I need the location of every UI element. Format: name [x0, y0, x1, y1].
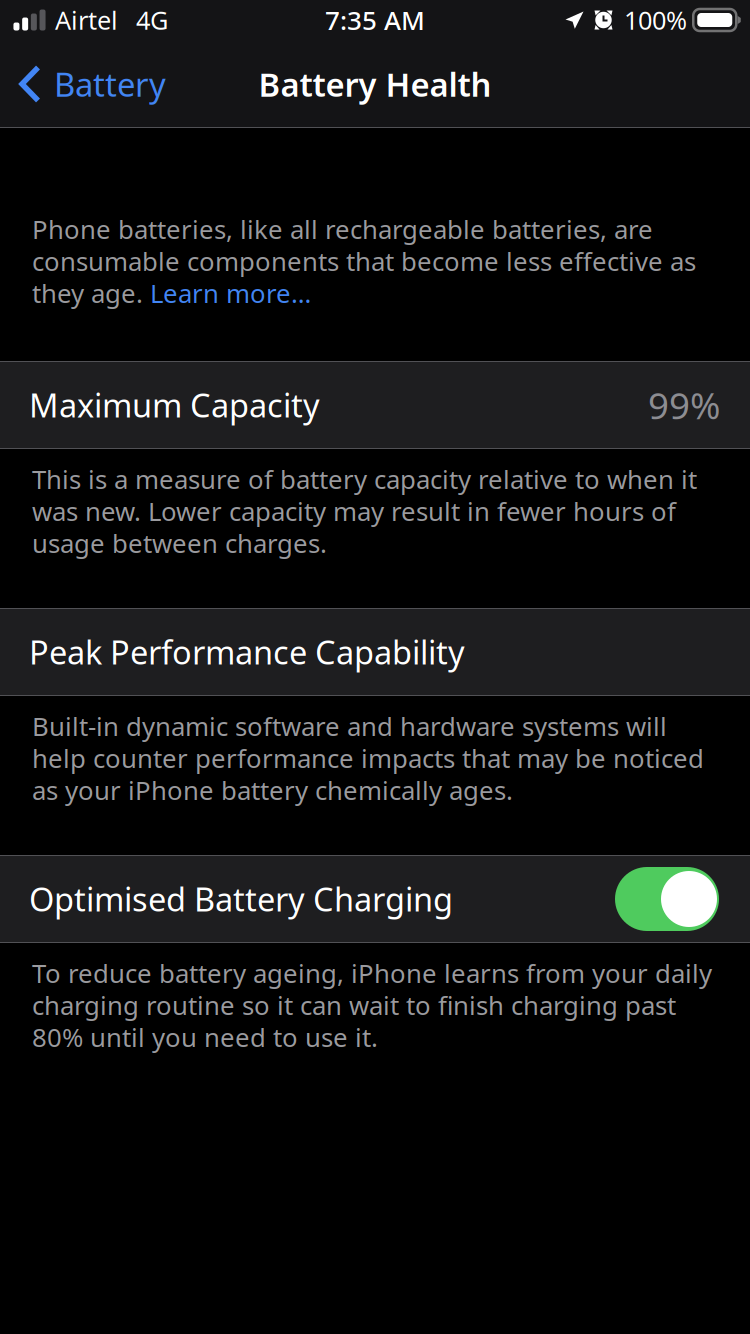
staticText: Battery	[54, 62, 166, 106]
staticText: Maximum Capacity	[29, 383, 320, 427]
staticText: 99%	[648, 380, 720, 430]
button[interactable]: Optimised Battery Charging	[615, 867, 719, 931]
staticText: usage between charges.	[32, 525, 327, 560]
staticText: This is a measure of battery capacity re…	[32, 461, 697, 496]
button[interactable]: Battery	[0, 40, 180, 128]
staticText: Battery Health	[258, 62, 491, 106]
staticText: Built-in dynamic software and hardware s…	[32, 708, 667, 743]
staticText: charging routine so it can wait to finis…	[32, 987, 676, 1022]
staticText: 7:35 AM	[325, 2, 425, 38]
staticText: as your iPhone battery chemically ages.	[32, 772, 513, 807]
button[interactable]: Peak Performance Capability	[0, 609, 750, 695]
staticText: Airtel	[55, 3, 118, 37]
staticText: they age.	[32, 275, 150, 310]
staticText: help counter performance impacts that ma…	[32, 740, 704, 775]
staticText: Peak Performance Capability	[29, 630, 465, 674]
staticText: 80% until you need to use it.	[32, 1019, 378, 1054]
staticText: Phone batteries, like all rechargeable b…	[32, 211, 653, 246]
staticText: To reduce battery ageing, iPhone learns …	[32, 955, 712, 990]
staticText: consumable components that become less e…	[32, 243, 696, 278]
staticText: Optimised Battery Charging	[29, 877, 453, 921]
staticText: 100%	[624, 3, 687, 37]
staticText: 4G	[136, 3, 168, 37]
staticText: was new. Lower capacity may result in fe…	[32, 493, 676, 528]
button[interactable]: Learn more…	[150, 275, 311, 310]
staticText: Learn more…	[150, 275, 311, 310]
